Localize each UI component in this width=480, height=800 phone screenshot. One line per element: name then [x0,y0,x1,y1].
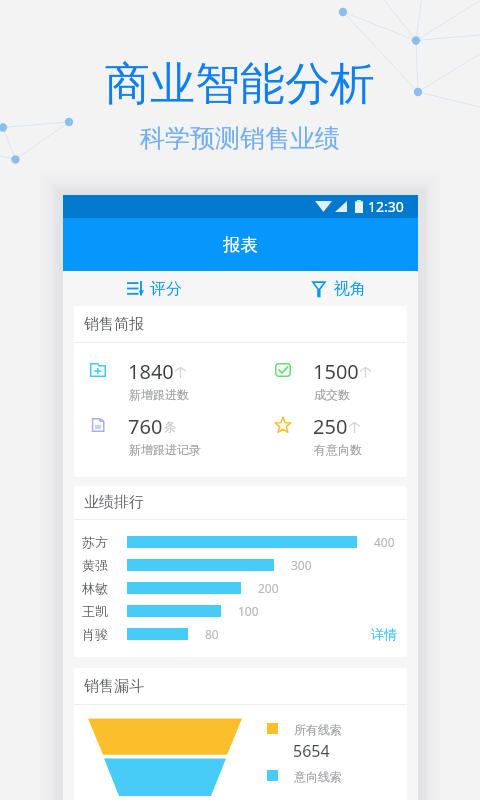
staticText: 苏方 [82,534,127,550]
staticText: 新增跟进数 [129,387,189,402]
other: Wi-Fi [315,201,332,212]
staticText: 80 [205,626,219,642]
staticText: 100 [238,603,259,619]
staticText: 760 [128,413,163,440]
staticText: 200 [258,580,279,596]
button[interactable]: Filter [304,271,398,306]
other: Filter [312,281,326,297]
staticText: 5654 [293,740,330,762]
button[interactable]: 760 [89,402,239,450]
staticText: 250 [313,413,348,440]
staticText: 300 [291,557,312,573]
staticText: 1840 [128,358,174,385]
staticText: 所有线索 [294,722,342,737]
staticText: 条 [164,419,176,434]
staticText: 意向线索 [294,769,342,784]
button[interactable]: 1500 [274,347,407,395]
other: Battery [355,200,363,213]
other: Sort [127,281,144,296]
staticText: 视角 [334,279,366,299]
staticText: 销售简报 [84,315,144,334]
staticText: 王凯 [82,603,127,619]
staticText: 400 [374,534,395,550]
staticText: 1500 [313,358,359,385]
staticText: 报表 [223,234,258,256]
staticText: 业绩排行 [84,493,144,512]
staticText: 销售漏斗 [84,677,144,696]
staticText: 成交数 [314,387,350,402]
staticText: 新增跟进记录 [129,442,201,457]
button[interactable]: 250 [274,402,407,450]
staticText: 有意向数 [314,442,362,457]
button[interactable]: 详情 [371,626,407,642]
staticText: 评分 [150,279,182,299]
button[interactable]: Sort [119,271,213,306]
staticText: 林敏 [82,580,127,596]
staticText: 科学预测销售业绩 [140,123,340,153]
staticText: 12:30 [368,197,404,216]
other: Signal [335,201,347,212]
staticText: 黄强 [82,557,127,573]
staticText: 肖骏 [82,626,127,642]
button[interactable]: 1840 [89,347,239,395]
staticText: 商业智能分析 [105,56,375,108]
